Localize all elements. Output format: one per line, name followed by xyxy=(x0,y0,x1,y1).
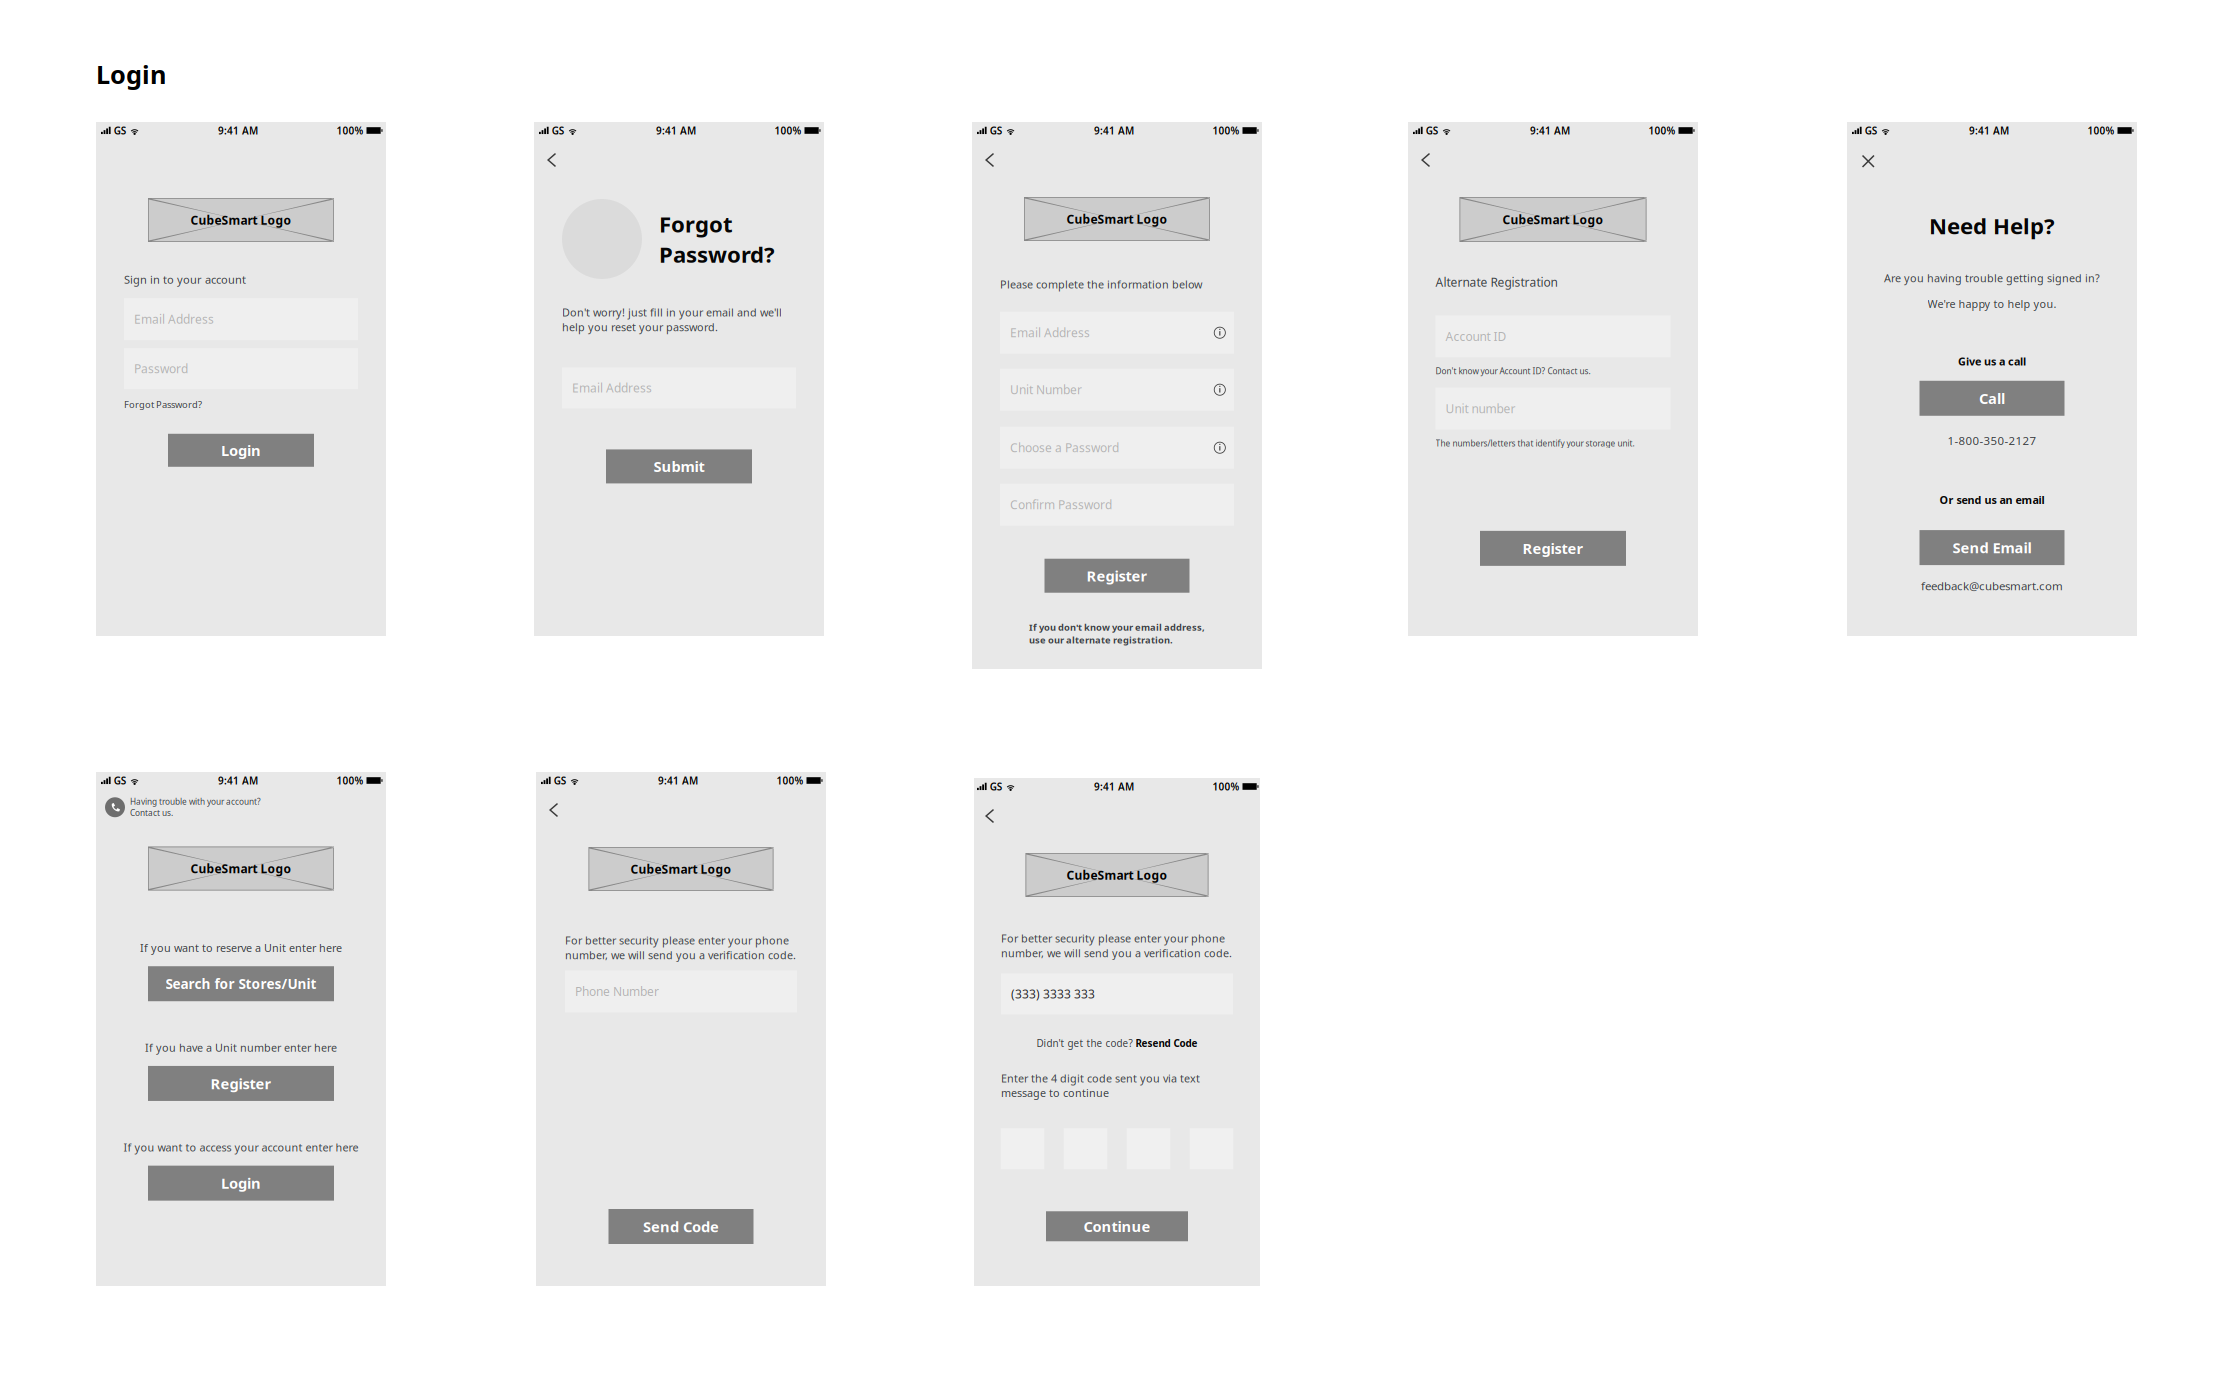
staticText: For better security please enter your ph… xyxy=(1001,931,1232,960)
staticText: GS xyxy=(114,124,127,137)
staticText: Didn't get the code? xyxy=(1036,1036,1132,1050)
staticText: Login xyxy=(96,57,166,91)
staticText: Resend Code xyxy=(1135,1036,1197,1050)
staticText: Give us a call xyxy=(1958,354,2026,369)
staticText: Confirm Password xyxy=(1010,496,1112,513)
button[interactable]: Search for Stores/Unit xyxy=(148,966,334,1001)
staticText: GS xyxy=(114,774,127,787)
staticText: Forgot Password? xyxy=(659,209,775,269)
button[interactable]: Choose a Password xyxy=(1000,427,1234,469)
staticText: For better security please enter your ph… xyxy=(565,933,796,962)
staticText: CubeSmart Logo xyxy=(630,861,731,877)
button[interactable]: Send Email xyxy=(1919,530,2064,565)
button[interactable]: Register xyxy=(1044,559,1189,593)
button[interactable]: Register xyxy=(1480,531,1626,566)
staticText: If you want to reserve a Unit enter here xyxy=(140,940,342,955)
staticText: GS xyxy=(552,124,565,137)
button[interactable]: Forgot Password? xyxy=(124,398,202,411)
staticText: Login xyxy=(221,1173,261,1193)
staticText: Call xyxy=(1979,388,2005,408)
staticText: CubeSmart Logo xyxy=(1502,211,1603,228)
staticText: 9:41 AM xyxy=(656,124,696,137)
staticText: 9:41 AM xyxy=(1094,780,1134,793)
button[interactable]: Back xyxy=(980,806,999,829)
staticText: Send Code xyxy=(643,1216,719,1236)
staticText: Alternate Registration xyxy=(1435,274,1557,290)
button[interactable]: Phone Number xyxy=(565,970,797,1012)
staticText: Or send us an email xyxy=(1939,492,2044,507)
staticText: (333) 3333 333 xyxy=(1011,986,1095,1002)
staticText: Don't know your Account ID? Contact us. xyxy=(1435,365,1590,377)
staticText: 100% xyxy=(336,124,363,137)
staticText: feedback@cubesmart.com xyxy=(1921,578,2063,594)
staticText: 100% xyxy=(336,774,363,787)
button[interactable]: Email Address xyxy=(1000,312,1234,354)
button[interactable]: Unit Number xyxy=(1000,369,1234,411)
staticText: CubeSmart Logo xyxy=(1066,867,1167,883)
button[interactable]: Continue xyxy=(1046,1211,1188,1241)
staticText: Unit number xyxy=(1445,400,1515,417)
staticText: Send Email xyxy=(1952,538,2031,558)
staticText: 9:41 AM xyxy=(218,774,258,787)
button[interactable]: Login xyxy=(168,434,314,467)
button[interactable]: Password xyxy=(124,348,358,389)
staticText: 9:41 AM xyxy=(218,124,258,137)
staticText: Having trouble with your account? Contac… xyxy=(130,796,261,818)
staticText: Register xyxy=(210,1073,271,1093)
button[interactable]: Back xyxy=(542,150,561,173)
button[interactable]: Close xyxy=(1855,150,1878,172)
button[interactable]: Call xyxy=(1919,381,2064,416)
staticText: If you don't know your email address, us… xyxy=(1029,621,1205,646)
staticText: The numbers/letters that identify your s… xyxy=(1435,438,1634,449)
button[interactable]: Register xyxy=(148,1066,334,1101)
staticText: GS xyxy=(1865,124,1878,137)
staticText: 9:41 AM xyxy=(1969,124,2009,137)
staticText: 100% xyxy=(1648,124,1675,137)
staticText: 9:41 AM xyxy=(1094,124,1134,137)
button[interactable]: Resend Code xyxy=(1135,1036,1197,1050)
staticText: Sign in to your account xyxy=(124,272,246,287)
button[interactable]: Submit xyxy=(606,449,752,483)
staticText: If you have a Unit number enter here xyxy=(145,1040,337,1055)
button[interactable]: Back xyxy=(544,800,563,823)
staticText: We're happy to help you. xyxy=(1927,296,2056,311)
staticText: GS xyxy=(990,124,1003,137)
staticText: Continue xyxy=(1083,1216,1150,1236)
staticText: 100% xyxy=(774,124,801,137)
staticText: 1-800-350-2127 xyxy=(1947,433,2036,448)
staticText: Please complete the information below xyxy=(1000,277,1202,292)
staticText: Account ID xyxy=(1445,328,1506,344)
staticText: Submit xyxy=(653,456,704,476)
staticText: If you want to access your account enter… xyxy=(123,1140,358,1155)
button[interactable]: Email Address xyxy=(124,298,358,340)
button[interactable]: Back xyxy=(980,150,999,173)
staticText: Register xyxy=(1522,538,1583,558)
button[interactable]: Email Address xyxy=(562,367,796,408)
button[interactable]: Account ID xyxy=(1435,315,1670,357)
staticText: CubeSmart Logo xyxy=(190,212,291,228)
staticText: Email Address xyxy=(1010,324,1090,341)
staticText: Choose a Password xyxy=(1010,439,1119,456)
staticText: Need Help? xyxy=(1929,210,2055,241)
staticText: Don't worry! just fill in your email and… xyxy=(562,305,782,334)
button[interactable]: Send Code xyxy=(608,1209,753,1244)
staticText: Phone Number xyxy=(575,983,659,999)
staticText: CubeSmart Logo xyxy=(1066,211,1167,227)
button[interactable]: Confirm Password xyxy=(1000,484,1234,526)
button[interactable]: Back xyxy=(1416,150,1435,173)
staticText: GS xyxy=(990,780,1003,793)
button[interactable]: Unit number xyxy=(1435,388,1670,430)
staticText: Password xyxy=(134,360,188,377)
button[interactable]: (333) 3333 333 xyxy=(1001,973,1233,1014)
staticText: CubeSmart Logo xyxy=(190,860,291,877)
staticText: Login xyxy=(221,440,261,460)
staticText: Are you having trouble getting signed in… xyxy=(1884,271,2100,285)
button[interactable]: Login xyxy=(148,1166,334,1201)
staticText: Unit Number xyxy=(1010,381,1082,398)
button[interactable]: Having trouble with your account? Contac… xyxy=(105,796,377,818)
staticText: Email Address xyxy=(572,380,652,396)
